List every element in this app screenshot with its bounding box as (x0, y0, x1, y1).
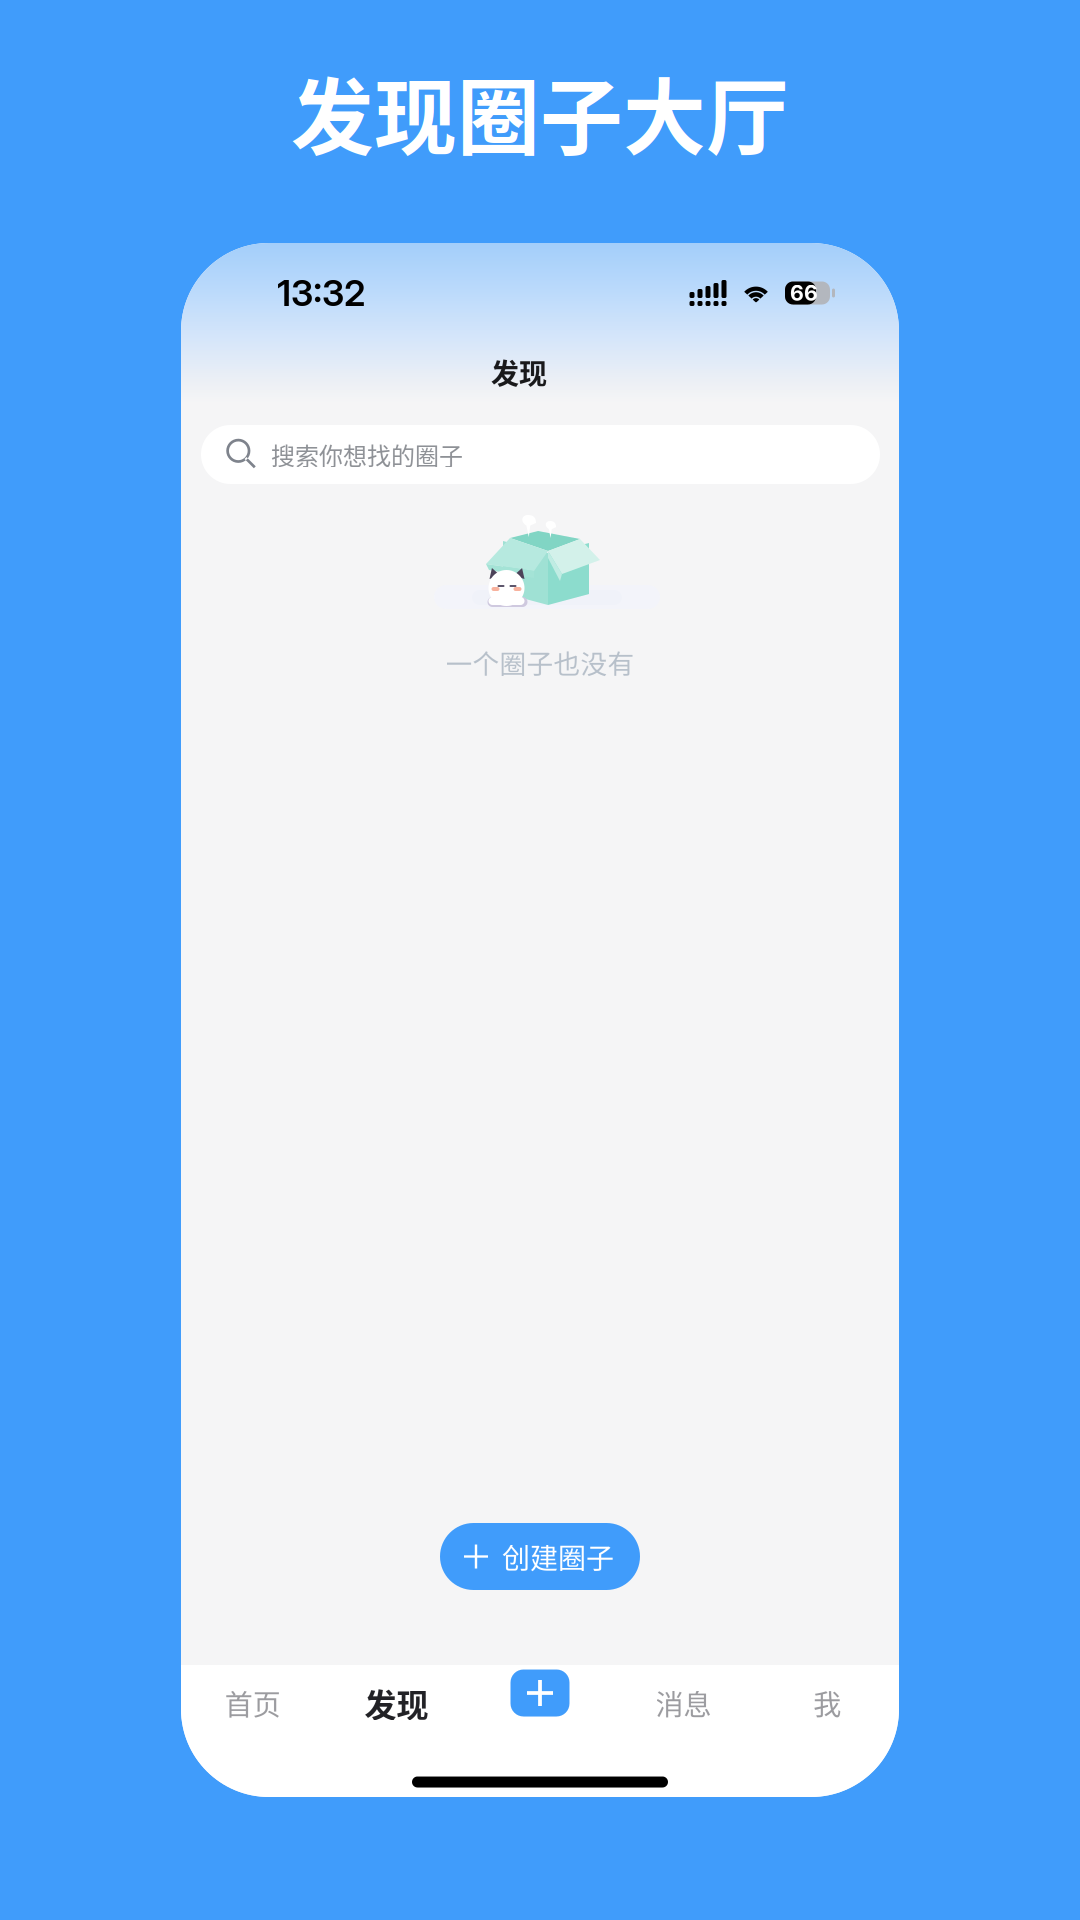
staticText: 消息 (656, 1683, 712, 1723)
button[interactable]: 搜索你想找的圈子 (201, 425, 880, 484)
staticText: 发现 (364, 1680, 428, 1726)
staticText: 发现圈子大厅 (291, 52, 789, 172)
staticText: 首页 (225, 1683, 281, 1723)
staticText: 搜索你想找的圈子 (271, 437, 463, 472)
staticText: 我 (813, 1683, 841, 1723)
button[interactable]: 首页 (181, 1665, 325, 1751)
button[interactable]: 发现 (325, 1665, 468, 1751)
button[interactable]: 消息 (612, 1665, 755, 1751)
button[interactable]: 创建圈子 (440, 1523, 640, 1590)
button[interactable]: 新建 (468, 1665, 612, 1751)
staticText: 发现 (491, 352, 547, 392)
staticText: 66 (790, 280, 818, 306)
staticText: 13:32 (277, 271, 365, 315)
button[interactable]: 我 (755, 1665, 899, 1751)
staticText: 一个圈子也没有 (445, 643, 634, 681)
staticText: 创建圈子 (502, 1536, 614, 1577)
